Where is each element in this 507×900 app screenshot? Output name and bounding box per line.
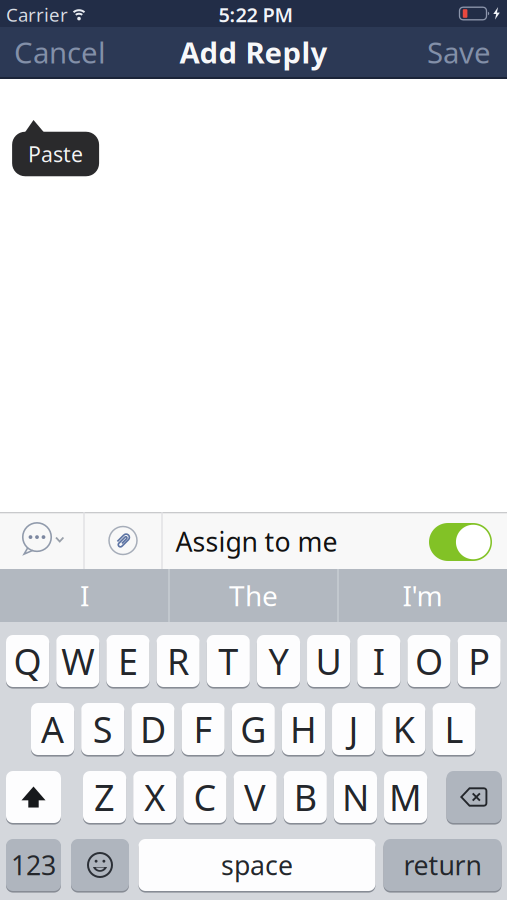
button[interactable]: Y [257,634,300,688]
staticText: B [294,773,317,821]
staticText: Q [14,637,42,685]
button[interactable]: F [181,702,225,756]
staticText: The [229,577,278,614]
button[interactable]: M [384,770,427,824]
staticText: space [221,847,293,883]
button[interactable]: Assign to me [429,523,492,561]
button[interactable]: H [282,702,325,756]
staticText: P [468,637,490,685]
staticText: Add Reply [179,32,327,71]
button[interactable]: W [56,634,99,688]
button[interactable]: 123 [6,838,61,892]
staticText: I'm [402,577,442,614]
staticText: V [244,773,266,821]
staticText: Carrier [6,2,68,27]
staticText: W [61,637,94,685]
staticText: X [144,773,165,821]
staticText: E [118,637,138,685]
button[interactable]: I [357,634,400,688]
button[interactable]: S [81,702,124,756]
staticText: A [41,705,64,753]
button[interactable]: V [233,770,277,824]
button[interactable]: J [332,702,375,756]
staticText: T [218,637,238,685]
button[interactable]: G [232,702,275,756]
staticText: return [403,847,481,883]
button[interactable]: space [138,838,375,892]
staticText: Cancel [14,32,106,71]
button[interactable]: return [383,838,501,892]
staticText: 123 [11,847,56,883]
staticText: J [349,705,359,753]
staticText: S [93,705,113,753]
button[interactable]: X [133,770,176,824]
button[interactable]: I [0,569,168,622]
button[interactable]: Shift [6,770,61,824]
button[interactable]: C [183,770,226,824]
staticText: M [389,773,422,821]
button[interactable]: K [382,702,425,756]
button[interactable]: Q [6,634,49,688]
button[interactable]: T [207,634,250,688]
staticText: L [444,705,463,753]
button[interactable]: Save [427,32,491,71]
staticText: H [290,705,317,753]
button[interactable]: Z [83,770,126,824]
button[interactable]: U [307,634,350,688]
button[interactable]: A [31,702,74,756]
button[interactable]: Comment options [0,512,84,569]
staticText: U [316,637,342,685]
button[interactable]: L [432,702,476,756]
staticText: 5:22 PM [218,1,293,28]
staticText: R [167,637,189,685]
button[interactable]: Paste [12,120,100,176]
staticText: O [415,637,443,685]
button[interactable]: P [457,634,501,688]
staticText: Save [427,32,491,71]
staticText: N [342,773,369,821]
button[interactable]: O [407,634,451,688]
staticText: I [373,637,385,685]
staticText: G [240,705,266,753]
button[interactable]: Cancel [14,32,106,71]
staticText: F [194,705,213,753]
button[interactable]: I'm [338,569,506,622]
button[interactable]: Emoji [71,838,129,892]
staticText: Assign to me [175,524,337,559]
staticText: K [393,705,415,753]
staticText: Z [94,773,115,821]
button[interactable]: Attach file [84,512,162,569]
button[interactable]: Delete [446,770,501,824]
button[interactable]: The [169,569,337,622]
button[interactable]: B [284,770,327,824]
button[interactable]: E [106,634,149,688]
staticText: C [193,773,216,821]
button[interactable]: D [131,702,174,756]
button[interactable]: N [334,770,377,824]
staticText: D [140,705,166,753]
button[interactable]: R [156,634,200,688]
staticText: Y [268,637,288,685]
staticText: Paste [28,140,83,168]
staticText: I [80,577,89,614]
